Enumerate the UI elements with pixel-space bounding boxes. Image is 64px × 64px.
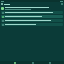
- button[interactable]: [1, 19, 63, 22]
- button[interactable]: [1, 15, 63, 18]
- button[interactable]: Add: [1, 7, 4, 10]
- button[interactable]: Library: [30, 61, 35, 64]
- button[interactable]: [1, 11, 63, 14]
- button[interactable]: Home: [12, 61, 17, 64]
- button[interactable]: Profile: [47, 61, 52, 64]
- button[interactable]: [1, 23, 63, 26]
